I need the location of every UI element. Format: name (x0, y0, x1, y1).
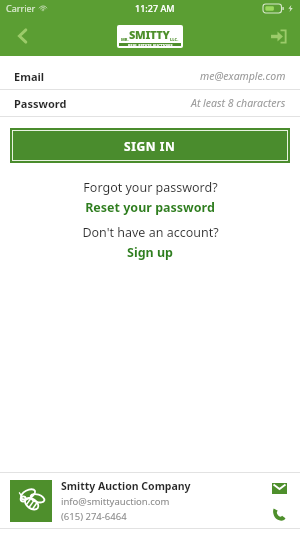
staticText: Smitty Auction Company (61, 479, 191, 493)
staticText: info@smittyauction.com (61, 495, 170, 508)
staticText: Password (14, 96, 67, 111)
staticText: (615) 274-6464 (61, 510, 127, 523)
button[interactable]: MR. (119, 27, 181, 46)
button[interactable]: Call (268, 503, 290, 525)
staticText: Don't have an account? (82, 224, 219, 241)
staticText: 11:27 AM (135, 2, 175, 14)
staticText: SMITTY (129, 27, 170, 42)
staticText: SIGN IN (124, 138, 176, 154)
staticText: me@example.com (200, 69, 286, 83)
staticText: REAL ESTATE AUCTIONS (128, 43, 173, 46)
button[interactable]: Password (0, 90, 300, 116)
button[interactable]: Reset your password (81, 198, 219, 217)
staticText: At least 8 characters (191, 96, 286, 110)
button[interactable]: Email (268, 477, 290, 499)
staticText: Reset your password (85, 199, 215, 216)
staticText: Forgot your password? (83, 179, 218, 196)
button[interactable]: Sign in (256, 16, 300, 56)
staticText: LLC. (170, 37, 179, 42)
staticText: Carrier (6, 2, 36, 14)
button[interactable]: Email (0, 63, 300, 89)
button[interactable]: Smitty Auction Company logo (10, 480, 52, 522)
staticText: MR. (121, 37, 129, 42)
staticText: Email (14, 69, 45, 84)
staticText: Sign up (127, 244, 173, 261)
button[interactable]: Sign up (123, 243, 177, 262)
button[interactable]: Back (0, 16, 46, 56)
button[interactable]: SIGN IN (14, 132, 286, 159)
